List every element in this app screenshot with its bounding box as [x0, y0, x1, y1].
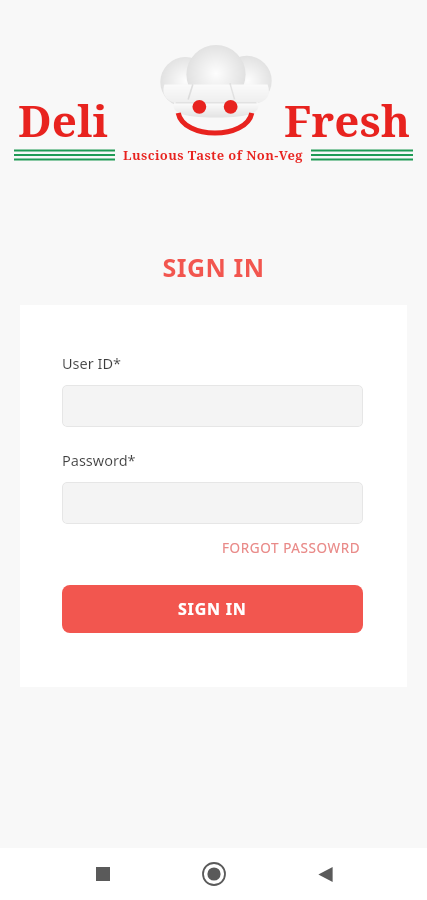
staticText: User ID* [62, 353, 121, 373]
button[interactable]: SIGN IN [62, 585, 363, 633]
button[interactable] [62, 482, 363, 524]
button[interactable]: Recent apps [75, 848, 131, 900]
button[interactable]: Home [186, 848, 242, 900]
button[interactable]: FORGOT PASSOWRD [220, 536, 363, 560]
staticText: Luscious Taste of Non-Veg [123, 146, 303, 164]
staticText: Deli [18, 90, 108, 150]
staticText: SIGN IN [0, 250, 427, 284]
staticText: FORGOT PASSOWRD [222, 539, 361, 557]
button[interactable]: Back [297, 848, 353, 900]
staticText: SIGN IN [178, 598, 247, 620]
staticText: Fresh [284, 90, 411, 150]
button[interactable] [62, 385, 363, 427]
staticText: Password* [62, 450, 136, 470]
